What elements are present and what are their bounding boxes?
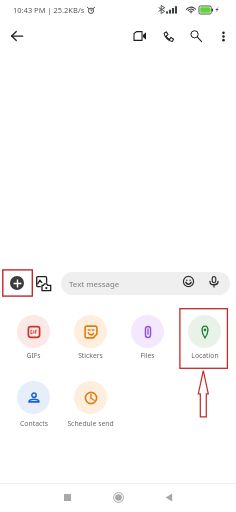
button[interactable]: Call (157, 25, 179, 47)
button[interactable]: Voice message (205, 273, 222, 290)
button[interactable]: Back (154, 482, 184, 512)
button[interactable]: Stickers (62, 315, 119, 362)
staticText: 10:43 PM | 25.2KB/s (13, 5, 85, 15)
button[interactable]: Home (103, 482, 133, 512)
staticText: GIFs (26, 351, 41, 360)
button[interactable]: Contacts (5, 381, 62, 428)
staticText: Text message (69, 279, 120, 290)
button[interactable]: Text message (61, 272, 230, 295)
button[interactable]: Gallery (34, 274, 53, 293)
button[interactable]: Schedule send (62, 381, 119, 428)
button[interactable]: Add attachment (10, 276, 24, 290)
staticText: Contacts (20, 419, 48, 428)
staticText: Location (191, 351, 219, 360)
staticText: Stickers (78, 351, 103, 360)
button[interactable]: More options (212, 25, 234, 47)
button[interactable]: Files (119, 315, 176, 362)
button[interactable]: Recent apps (52, 482, 82, 512)
staticText: Files (140, 351, 155, 360)
button[interactable]: Back (6, 25, 28, 47)
button[interactable]: GIFs (5, 315, 62, 362)
button[interactable]: Search (185, 25, 207, 47)
button[interactable]: Location (176, 315, 233, 362)
staticText: Schedule send (67, 419, 114, 428)
button[interactable]: Emoji (180, 273, 197, 290)
button[interactable]: Video call (129, 25, 151, 47)
